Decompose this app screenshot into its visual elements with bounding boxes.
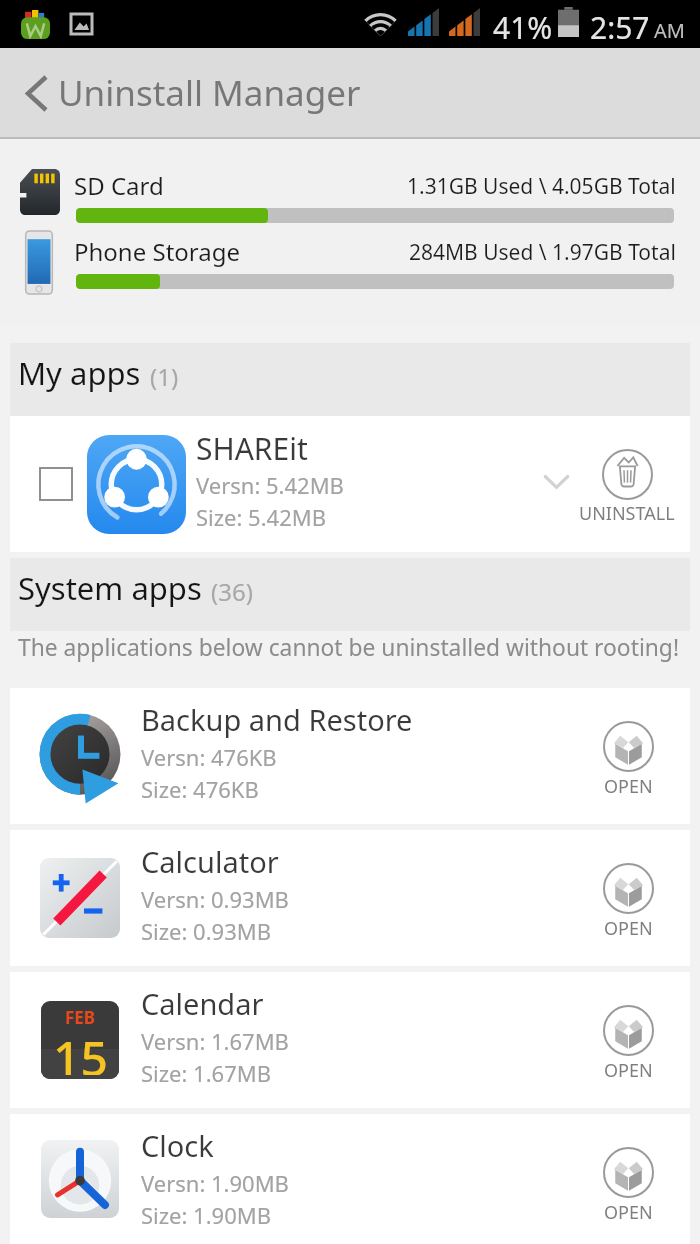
staticText: Calendar — [141, 984, 264, 1023]
staticText: OPEN — [604, 1058, 653, 1083]
staticText: My apps — [18, 352, 141, 394]
staticText: Backup and Restore — [141, 700, 413, 739]
button[interactable]: Expand — [544, 475, 569, 490]
button[interactable]: Back — [0, 48, 700, 139]
staticText: Size: 1.67MB — [141, 1058, 272, 1088]
other: Back — [28, 77, 46, 110]
button[interactable]: OPEN — [568, 863, 688, 941]
staticText: Versn: 5.42MB — [196, 470, 344, 500]
staticText: 41% — [493, 7, 553, 48]
staticText: System apps — [18, 567, 202, 609]
button[interactable]: FEB — [10, 972, 690, 1108]
staticText: 1.31GB Used \ 4.05GB Total — [407, 172, 676, 201]
staticText: Uninstall Manager — [58, 69, 361, 117]
staticText: 2:57 — [590, 7, 650, 48]
staticText: Size: 0.93MB — [141, 916, 272, 946]
staticText: Phone Storage — [74, 235, 241, 268]
staticText: Size: 476KB — [141, 774, 259, 804]
staticText: AM — [654, 17, 685, 44]
staticText: Size: 1.90MB — [141, 1200, 272, 1230]
button[interactable]: Select app — [10, 416, 690, 552]
button[interactable]: Backup and Restore — [10, 688, 690, 824]
staticText: 15 — [53, 1025, 108, 1075]
button[interactable]: OPEN — [568, 721, 688, 799]
staticText: Size: 5.42MB — [196, 502, 327, 532]
staticText: Versn: 0.93MB — [141, 884, 289, 914]
staticText: OPEN — [604, 1200, 653, 1225]
button[interactable]: UNINSTALL — [507, 449, 700, 526]
staticText: SD Card — [74, 169, 164, 202]
staticText: Versn: 476KB — [141, 742, 277, 772]
button[interactable]: OPEN — [568, 1005, 688, 1083]
staticText: 284MB Used \ 1.97GB Total — [409, 238, 676, 267]
staticText: OPEN — [604, 916, 653, 941]
staticText: Calculator — [141, 842, 279, 881]
staticText: Versn: 1.90MB — [141, 1168, 289, 1198]
staticText: (36) — [211, 575, 253, 608]
staticText: Clock — [141, 1126, 214, 1165]
staticText: UNINSTALL — [579, 501, 675, 526]
staticText: SHAREit — [196, 428, 308, 469]
staticText: The applications below cannot be uninsta… — [18, 632, 680, 663]
staticText: OPEN — [604, 774, 653, 799]
staticText: FEB — [65, 1006, 96, 1029]
staticText: Versn: 1.67MB — [141, 1026, 289, 1056]
button[interactable]: OPEN — [568, 1147, 688, 1225]
button[interactable]: Select app — [39, 467, 73, 501]
staticText: (1) — [150, 360, 179, 393]
button[interactable]: Calculator — [10, 830, 690, 966]
button[interactable]: Clock — [10, 1114, 690, 1244]
